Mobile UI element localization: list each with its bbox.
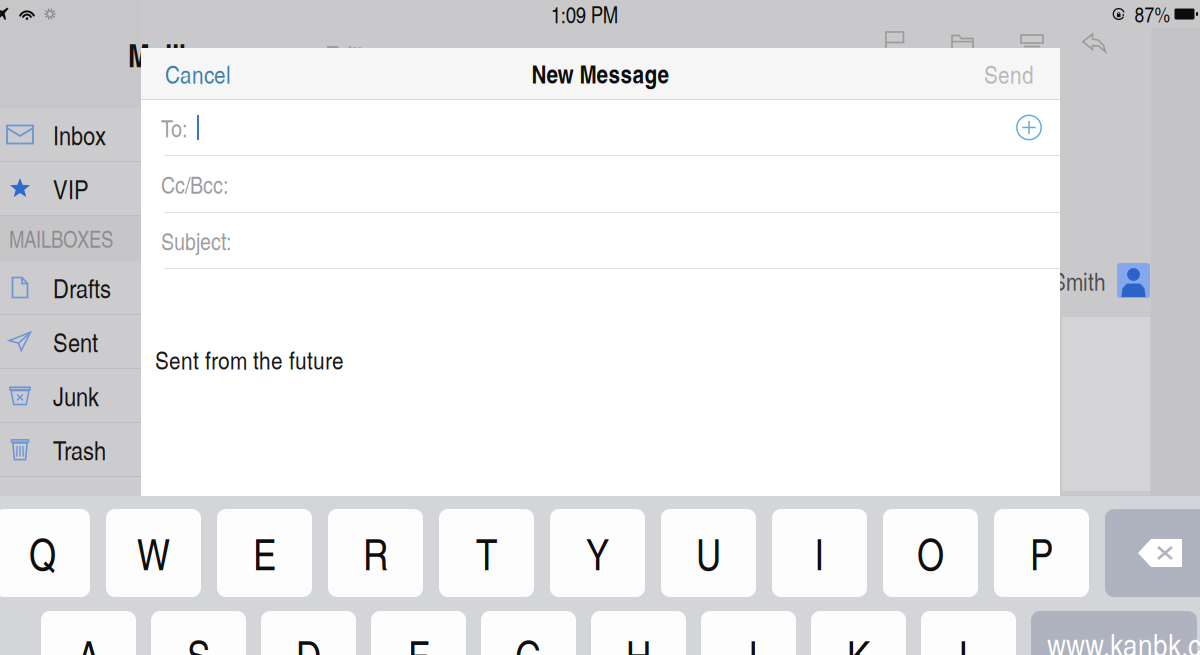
button[interactable]: W [106, 509, 201, 597]
staticText: Drafts [53, 269, 111, 306]
button[interactable]: Move to folder [951, 33, 974, 51]
staticText: W [137, 524, 170, 582]
staticText: Cc/Bcc: [161, 167, 228, 200]
button[interactable]: J [701, 611, 796, 655]
staticText: Send [984, 56, 1034, 91]
button[interactable]: Archive [1020, 33, 1044, 50]
button[interactable]: G [481, 611, 576, 655]
staticText: New Message [531, 56, 669, 91]
staticText: G [515, 626, 542, 655]
staticText: Cancel [165, 56, 231, 91]
staticText: E [253, 524, 276, 582]
button[interactable]: Q [0, 509, 90, 597]
button[interactable]: T [439, 509, 534, 597]
button[interactable]: VIP [0, 162, 141, 215]
staticText: Mailboxes [128, 32, 254, 77]
button[interactable]: Add contact [1016, 114, 1060, 140]
button[interactable]: P [994, 509, 1089, 597]
staticText: 1:09 PM [551, 0, 618, 30]
staticText: VIP [53, 170, 89, 207]
staticText: MAILBOXES [9, 223, 113, 254]
button[interactable]: D [261, 611, 356, 655]
button[interactable]: Sent [0, 315, 141, 368]
button[interactable]: R [328, 509, 423, 597]
button[interactable]: return [1031, 611, 1197, 655]
button[interactable]: Reply [1082, 33, 1108, 55]
staticText: H [626, 626, 651, 655]
staticText: L [959, 626, 978, 655]
button[interactable]: F [371, 611, 466, 655]
staticText: www.kanbk.com [1047, 622, 1200, 655]
button[interactable]: A [41, 611, 136, 655]
button[interactable]: Send [984, 48, 1060, 99]
staticText: O [917, 524, 944, 582]
staticText: S [187, 626, 210, 655]
button[interactable]: O [883, 509, 978, 597]
staticText: Inbox [53, 116, 106, 153]
button[interactable]: Cancel [141, 48, 231, 99]
staticText: Smith [1052, 263, 1106, 298]
staticText: P [1030, 524, 1053, 582]
staticText: Sent [53, 323, 98, 360]
button[interactable]: H [591, 611, 686, 655]
staticText: Edit [325, 36, 363, 73]
button[interactable]: E [217, 509, 312, 597]
button[interactable]: Delete [1105, 509, 1200, 597]
staticText: Y [586, 524, 609, 582]
button[interactable]: S [151, 611, 246, 655]
staticText: R [363, 524, 388, 582]
button[interactable]: L [921, 611, 1016, 655]
button[interactable]: U [661, 509, 756, 597]
staticText: U [696, 524, 721, 582]
staticText: D [296, 626, 321, 655]
button[interactable]: Y [550, 509, 645, 597]
staticText: I [814, 524, 824, 582]
staticText: J [740, 626, 757, 655]
staticText: Junk [53, 377, 99, 414]
staticText: Trash [53, 431, 106, 468]
staticText: Subject: [161, 224, 231, 257]
staticText: K [847, 626, 870, 655]
button[interactable]: Drafts [0, 261, 141, 314]
button[interactable]: Junk [0, 369, 141, 422]
staticText: A [77, 626, 100, 655]
button[interactable]: K [811, 611, 906, 655]
button[interactable]: I [772, 509, 867, 597]
staticText: return [1119, 651, 1181, 655]
button[interactable]: Flag [885, 31, 905, 53]
button[interactable]: Inbox [0, 108, 141, 161]
staticText: To: [161, 111, 187, 144]
staticText: Q [29, 524, 56, 582]
staticText: 87% [1134, 0, 1170, 29]
staticText: F [408, 626, 429, 655]
button[interactable]: Trash [0, 423, 141, 476]
staticText: Sent from the future [155, 342, 344, 377]
staticText: T [476, 524, 497, 582]
